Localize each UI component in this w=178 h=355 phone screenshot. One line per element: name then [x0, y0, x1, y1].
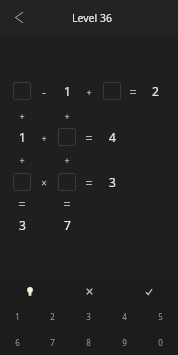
- button[interactable]: 2: [35, 304, 70, 329]
- button[interactable]: 4: [106, 304, 142, 329]
- staticText: 7: [64, 217, 71, 233]
- staticText: 3: [86, 311, 91, 322]
- button[interactable]: 1: [0, 304, 35, 329]
- staticText: +: [64, 110, 70, 122]
- staticText: ×: [41, 176, 47, 190]
- staticText: 2: [50, 311, 55, 322]
- staticText: 0: [158, 337, 163, 348]
- staticText: +: [64, 154, 70, 166]
- staticText: =: [85, 129, 93, 147]
- staticText: 1: [15, 311, 20, 322]
- button[interactable]: 6: [0, 329, 35, 355]
- staticText: 4: [109, 129, 116, 145]
- staticText: +: [86, 86, 92, 98]
- staticText: =: [129, 83, 137, 101]
- button[interactable]: 3: [70, 304, 106, 329]
- button[interactable]: Back: [7, 5, 31, 29]
- staticText: 3: [109, 174, 116, 190]
- button[interactable]: 9: [106, 329, 142, 355]
- staticText: =: [63, 195, 71, 213]
- staticText: 8: [86, 337, 91, 348]
- button[interactable]: Check answer: [119, 279, 178, 304]
- staticText: +: [41, 132, 47, 144]
- button[interactable]: Empty answer cell: [13, 82, 31, 100]
- button[interactable]: Hint: [0, 279, 60, 304]
- button[interactable]: 8: [70, 329, 106, 355]
- staticText: -: [42, 84, 46, 100]
- button[interactable]: 0: [142, 329, 178, 355]
- button[interactable]: 5: [142, 304, 178, 329]
- staticText: Level 36: [72, 11, 112, 25]
- button[interactable]: Empty answer cell: [58, 128, 76, 146]
- staticText: 3: [19, 217, 26, 233]
- staticText: 5: [158, 311, 163, 322]
- button[interactable]: 7: [35, 329, 70, 355]
- staticText: +: [19, 154, 25, 166]
- staticText: 1: [64, 83, 71, 99]
- button[interactable]: Empty answer cell: [103, 82, 121, 100]
- staticText: =: [85, 174, 93, 192]
- button[interactable]: Clear: [60, 279, 119, 304]
- staticText: +: [19, 110, 25, 122]
- staticText: 6: [15, 337, 20, 348]
- staticText: =: [18, 195, 26, 213]
- button[interactable]: Empty answer cell: [58, 173, 76, 191]
- staticText: 4: [122, 311, 127, 322]
- button[interactable]: Empty answer cell: [13, 173, 31, 191]
- staticText: 9: [122, 337, 127, 348]
- staticText: 1: [19, 129, 26, 145]
- staticText: 2: [152, 83, 159, 99]
- staticText: 7: [50, 337, 55, 348]
